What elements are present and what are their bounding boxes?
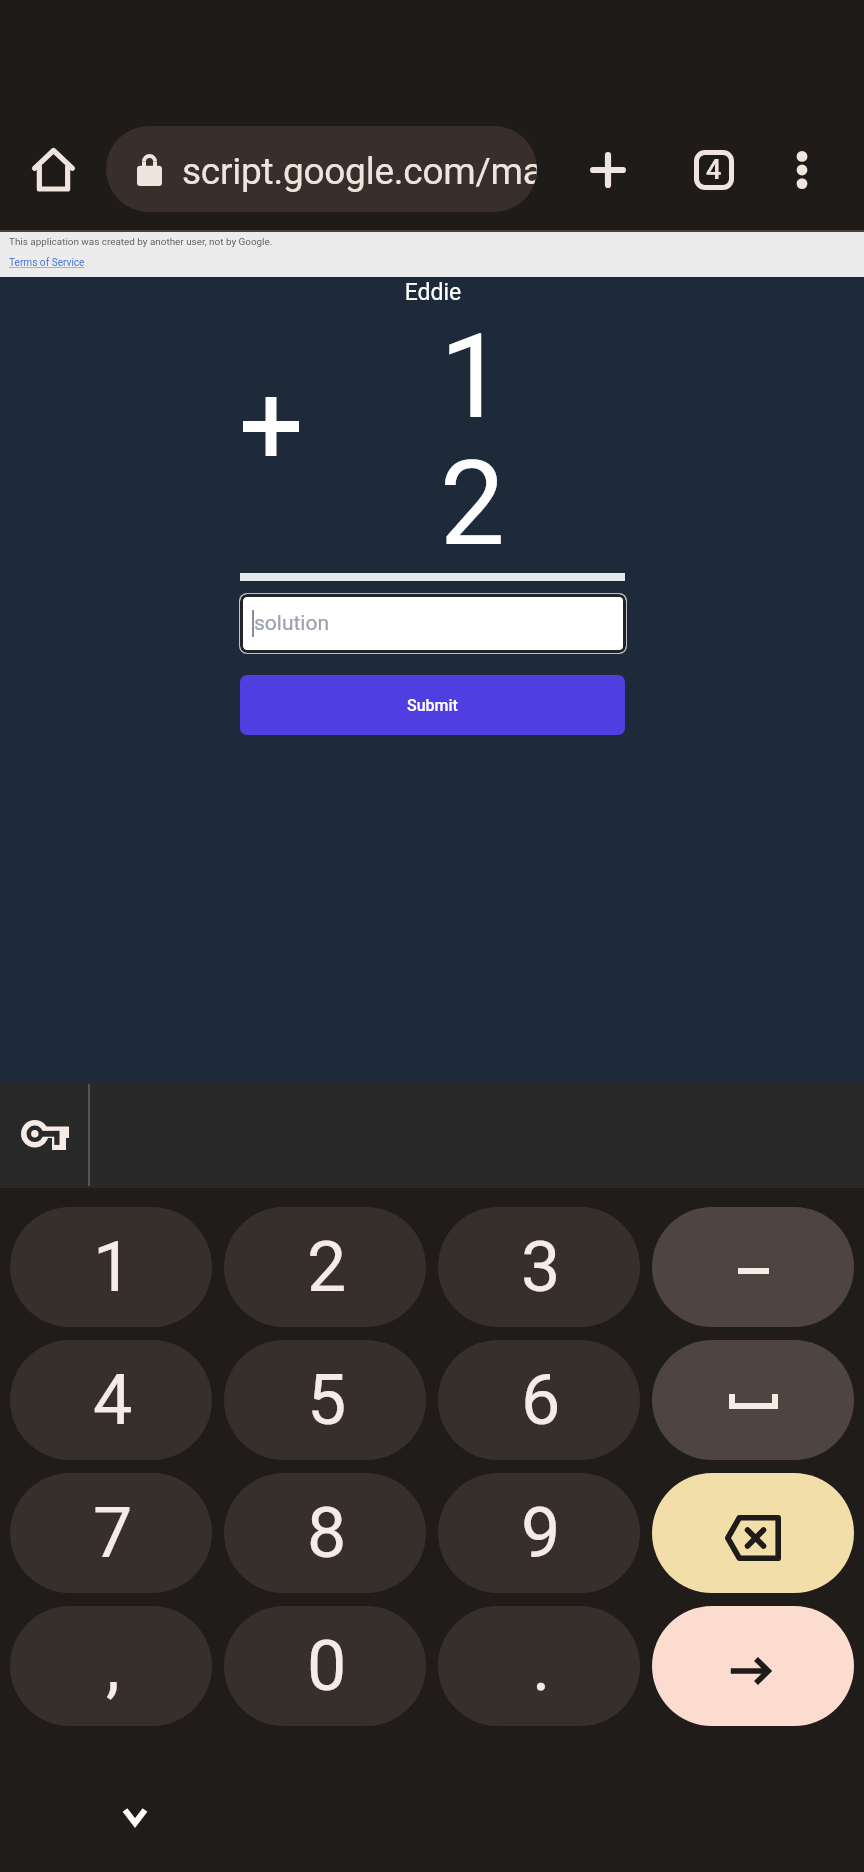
staticText: 1 (365, 309, 505, 445)
staticText: 9 (521, 1492, 561, 1574)
staticText: 6 (521, 1359, 561, 1441)
staticText: 3 (521, 1226, 561, 1308)
button[interactable]: Space (652, 1340, 854, 1460)
button[interactable]: , (10, 1606, 212, 1726)
button[interactable]: New tab (568, 130, 648, 210)
staticText: 4 (706, 154, 722, 186)
button[interactable]: 5 (224, 1340, 426, 1460)
button[interactable]: 2 (224, 1207, 426, 1327)
staticText: , (106, 1625, 120, 1707)
button[interactable]: Tabs (674, 130, 754, 210)
staticText: 1 (93, 1226, 133, 1308)
staticText: . (532, 1625, 551, 1707)
button[interactable]: script.google.com/ma (106, 126, 537, 212)
button[interactable]: 4 (10, 1340, 212, 1460)
button[interactable]: 3 (438, 1207, 640, 1327)
button[interactable]: 1 (10, 1207, 212, 1327)
button[interactable]: 7 (10, 1473, 212, 1593)
button[interactable]: Submit (240, 675, 625, 735)
staticText: 2 (365, 436, 505, 572)
button[interactable]: Home (13, 130, 93, 210)
staticText: This application was created by another … (9, 236, 273, 248)
staticText: 7 (93, 1492, 133, 1574)
button[interactable]: . (438, 1606, 640, 1726)
staticText: solution (254, 611, 330, 636)
button[interactable]: Minus (652, 1207, 854, 1327)
staticText: 0 (307, 1625, 347, 1707)
button[interactable]: solution (239, 593, 627, 654)
button[interactable]: Enter (652, 1606, 854, 1726)
staticText: 4 (93, 1359, 133, 1441)
staticText: 5 (307, 1359, 347, 1441)
button[interactable]: Hide keyboard (105, 1786, 165, 1846)
button[interactable]: More options (762, 130, 842, 210)
staticText: Eddie (1, 279, 864, 306)
button[interactable]: 8 (224, 1473, 426, 1593)
button[interactable]: 0 (224, 1606, 426, 1726)
staticText: Submit (407, 696, 458, 715)
staticText: 2 (307, 1226, 347, 1308)
staticText: script.google.com/ma (182, 150, 537, 193)
button[interactable]: Passwords (0, 1082, 89, 1188)
button[interactable]: 9 (438, 1473, 640, 1593)
button[interactable]: Backspace (652, 1473, 854, 1593)
staticText: 8 (307, 1492, 347, 1574)
button[interactable]: Terms of Service (9, 257, 85, 269)
staticText: Terms of Service (9, 257, 85, 269)
button[interactable]: 6 (438, 1340, 640, 1460)
